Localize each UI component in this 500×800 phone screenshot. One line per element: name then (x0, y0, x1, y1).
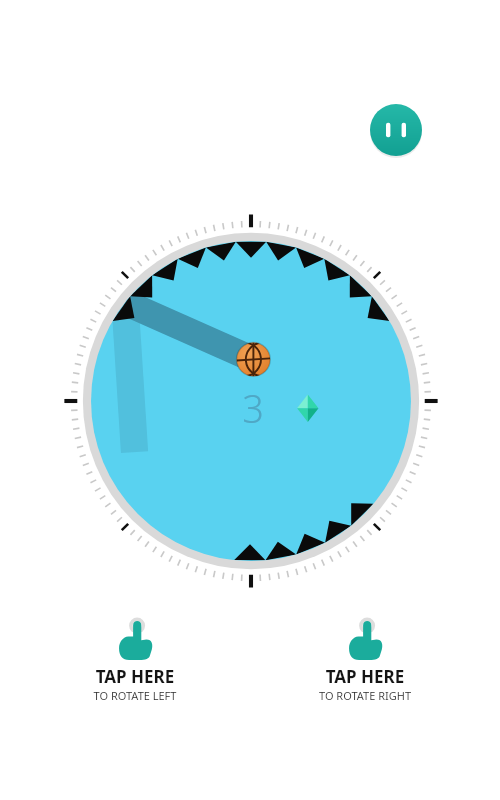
staticText: TO ROTATE LEFT (47, 688, 223, 703)
button[interactable]: Rotate right (277, 618, 453, 704)
button[interactable]: Pause (370, 104, 422, 156)
staticText: 3 (233, 382, 273, 434)
staticText: TAP HERE (277, 665, 453, 688)
button[interactable]: Rotate left (47, 618, 223, 704)
staticText: TO ROTATE RIGHT (277, 688, 453, 703)
staticText: TAP HERE (47, 665, 223, 688)
